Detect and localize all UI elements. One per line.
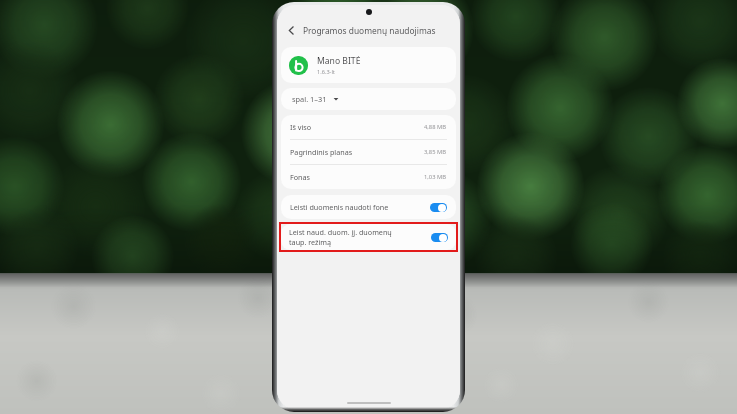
staticText: 1.6.3-lt	[317, 68, 335, 76]
staticText: 1,03 MB	[424, 173, 447, 181]
button[interactable]: Back	[277, 19, 460, 41]
button[interactable]: Iš viso	[281, 115, 456, 139]
button[interactable]: Back	[283, 22, 299, 38]
staticText: 4,88 MB	[424, 123, 447, 131]
staticText: Programos duomenų naudojimas	[303, 25, 436, 36]
staticText: taup. režimą	[289, 237, 332, 247]
button[interactable]: Toggle	[431, 233, 448, 242]
button[interactable]: spal. 1–31	[281, 88, 456, 110]
staticText: Pagrindinis planas	[290, 147, 424, 157]
staticText: Mano BITĖ	[317, 55, 361, 67]
staticText: Fonas	[290, 172, 424, 182]
button[interactable]: Fonas	[281, 165, 456, 189]
staticText: Leisti duomenis naudoti fone	[290, 202, 430, 212]
button[interactable]: Leist naud. duom. įj. duomenų	[281, 224, 456, 250]
button[interactable]: Mano BITĖ	[281, 47, 456, 83]
staticText: 3,85 MB	[424, 148, 447, 156]
button[interactable]: Pagrindinis planas	[281, 140, 456, 164]
staticText: spal. 1–31	[292, 94, 327, 104]
button[interactable]: Toggle	[430, 203, 447, 212]
staticText: Leist naud. duom. įj. duomenų	[289, 227, 392, 237]
button[interactable]: Leisti duomenis naudoti fone	[281, 195, 456, 219]
staticText: Iš viso	[290, 122, 424, 132]
